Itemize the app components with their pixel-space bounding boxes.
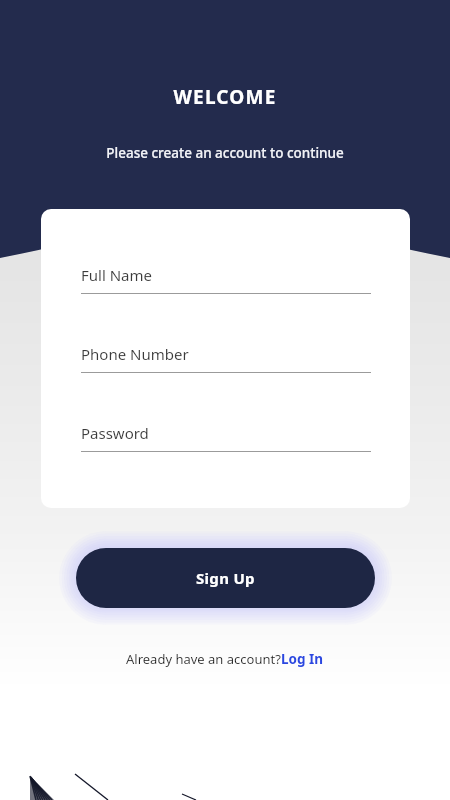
staticText: Sign Up xyxy=(196,568,255,588)
button[interactable]: Phone Number xyxy=(41,344,410,373)
button[interactable]: Sign Up xyxy=(76,548,375,608)
staticText: Phone Number xyxy=(81,344,189,364)
button[interactable]: Log In xyxy=(281,650,324,668)
button[interactable]: Password xyxy=(41,423,410,452)
staticText: Full Name xyxy=(81,265,152,285)
staticText: Already have an account? xyxy=(126,650,281,668)
button[interactable]: Full Name xyxy=(41,265,410,294)
other: Decoration xyxy=(0,740,450,800)
staticText: Password xyxy=(81,423,149,443)
staticText: Log In xyxy=(281,650,324,668)
staticText: Please create an account to continue xyxy=(106,144,344,162)
staticText: WELCOME xyxy=(173,84,277,110)
